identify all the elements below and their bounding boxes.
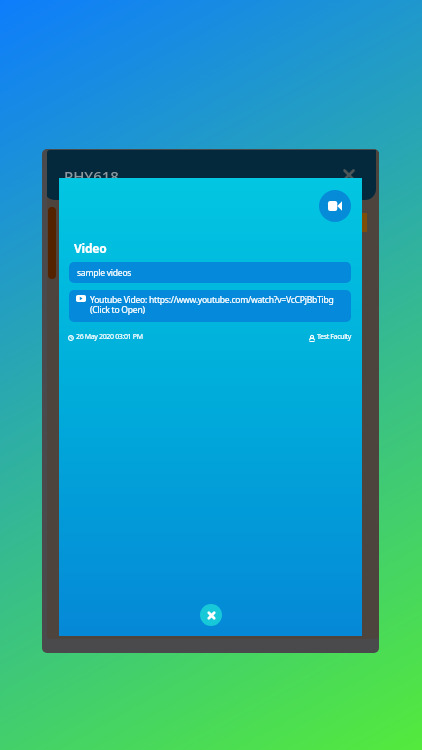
staticText: Youtube Video: https://www.youtube.com/w… [90, 294, 334, 315]
button[interactable]: Close [200, 604, 222, 626]
staticText: Video [74, 240, 107, 256]
button[interactable]: Youtube Video: https://www.youtube.com/w… [69, 290, 351, 322]
staticText: 26 May 2020 03:01 PM [76, 332, 143, 342]
staticText: sample videos [77, 267, 132, 279]
button[interactable]: Start video call [319, 190, 351, 222]
staticText: Test Faculty [317, 332, 351, 342]
staticText: PHY618 [64, 166, 119, 186]
button[interactable]: sample videos [69, 262, 351, 283]
